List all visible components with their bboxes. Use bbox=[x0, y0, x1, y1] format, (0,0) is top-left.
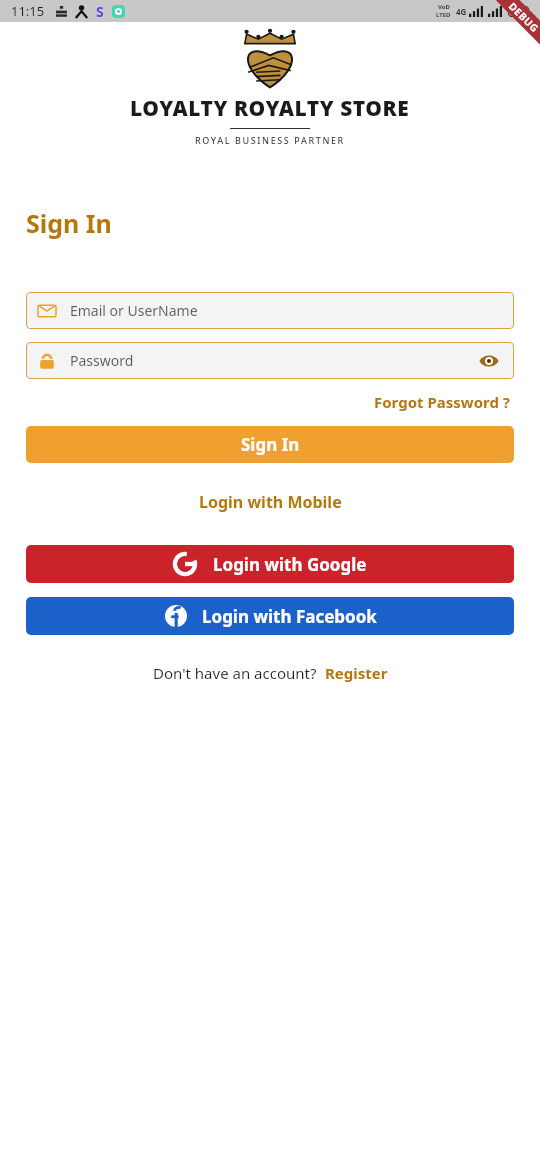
staticText: VoD bbox=[438, 3, 450, 11]
staticText: 52 bbox=[514, 7, 523, 17]
staticText: LOYALTY ROYALTY STORE bbox=[130, 94, 410, 123]
staticText: Password bbox=[70, 351, 476, 370]
staticText: Login with Facebook bbox=[202, 605, 377, 628]
button[interactable]: Forgot Password ? bbox=[370, 388, 514, 416]
staticText: S bbox=[96, 2, 104, 21]
button[interactable]: Login with Mobile bbox=[193, 485, 348, 519]
staticText: DEBUG bbox=[506, 0, 540, 35]
button[interactable]: Login with Facebook bbox=[26, 597, 514, 635]
button[interactable]: Email or UserName bbox=[26, 292, 514, 329]
button[interactable]: Password bbox=[26, 342, 514, 379]
staticText: Email or UserName bbox=[70, 301, 198, 320]
staticText: LTED bbox=[436, 11, 451, 19]
staticText: Don't have an account? bbox=[153, 663, 317, 683]
staticText: Login with Google bbox=[213, 553, 367, 576]
staticText: 11:15 bbox=[11, 2, 45, 20]
staticText: Register bbox=[325, 663, 388, 683]
staticText: Sign In bbox=[241, 433, 300, 456]
staticText: 4G bbox=[456, 6, 467, 17]
button[interactable]: Don't have an account? bbox=[149, 659, 392, 687]
button[interactable]: Show password bbox=[476, 348, 502, 374]
button[interactable]: Login with Google bbox=[26, 545, 514, 583]
staticText: Sign In bbox=[26, 206, 112, 240]
staticText: ROYAL BUSINESS PARTNER bbox=[195, 134, 345, 146]
button[interactable]: Sign In bbox=[26, 426, 514, 463]
